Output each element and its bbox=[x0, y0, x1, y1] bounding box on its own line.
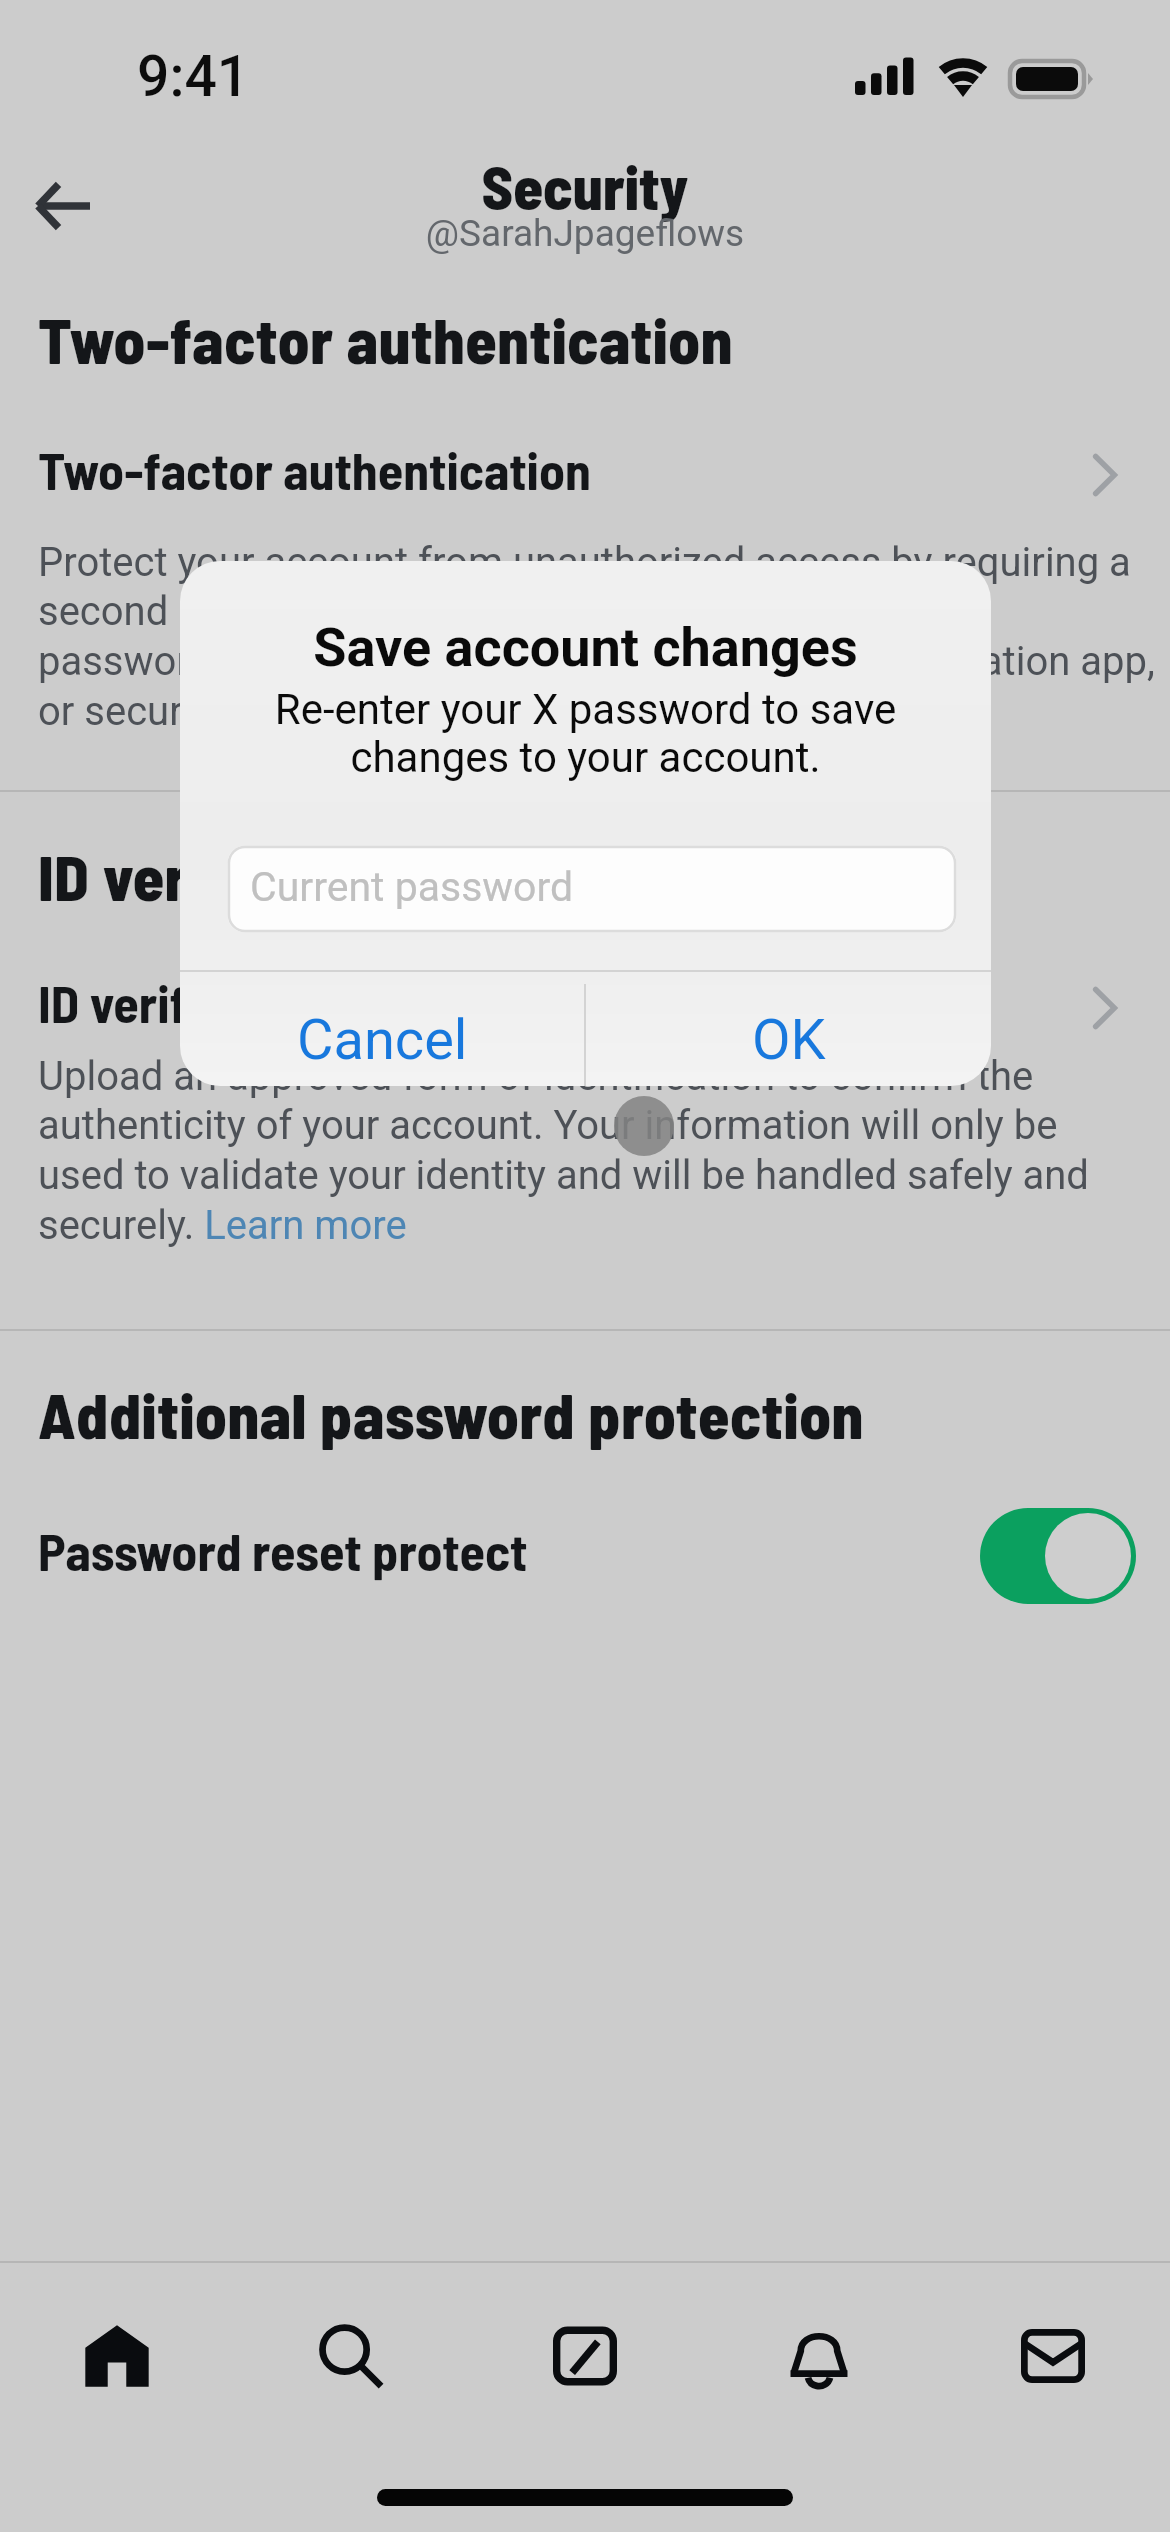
staticText: Two-factor authentication bbox=[38, 301, 733, 377]
staticText: Upload an approved form of identificatio… bbox=[38, 1053, 1089, 1249]
staticText: ID verification bbox=[38, 838, 408, 914]
staticText: @SarahJpageflows bbox=[0, 212, 1170, 255]
staticText: Security bbox=[0, 150, 1170, 222]
button[interactable]: OK bbox=[586, 984, 991, 1086]
button[interactable]: Two-factor authentication bbox=[0, 426, 1170, 512]
button[interactable]: Cancel bbox=[180, 984, 584, 1086]
staticText: Save account changes bbox=[180, 616, 991, 679]
staticText: 9:41 bbox=[137, 43, 250, 110]
staticText: Additional password protection bbox=[38, 1376, 864, 1452]
staticText: Two-factor authentication bbox=[38, 438, 591, 500]
staticText: Current password bbox=[250, 863, 574, 911]
button[interactable]: ID verification bbox=[0, 959, 1170, 1045]
button[interactable]: Current password bbox=[228, 846, 956, 932]
staticText: Protect your account from unauthorized a… bbox=[38, 539, 1155, 735]
button[interactable]: Search bbox=[234, 2296, 468, 2416]
button[interactable]: Messages bbox=[936, 2296, 1170, 2416]
button[interactable]: Notifications bbox=[702, 2296, 936, 2416]
button[interactable]: Grok bbox=[468, 2296, 702, 2416]
button[interactable]: Back bbox=[14, 158, 110, 254]
staticText: Password reset protect bbox=[38, 1519, 528, 1581]
staticText: ID verification bbox=[38, 971, 332, 1033]
button[interactable]: Home bbox=[0, 2296, 234, 2416]
staticText: Cancel bbox=[297, 1007, 468, 1073]
button[interactable]: Password reset protect bbox=[0, 1502, 1170, 1598]
staticText: OK bbox=[752, 1007, 826, 1073]
staticText: Re-enter your X password to save changes… bbox=[180, 685, 991, 782]
button[interactable]: Password reset protect toggle bbox=[980, 1508, 1136, 1604]
